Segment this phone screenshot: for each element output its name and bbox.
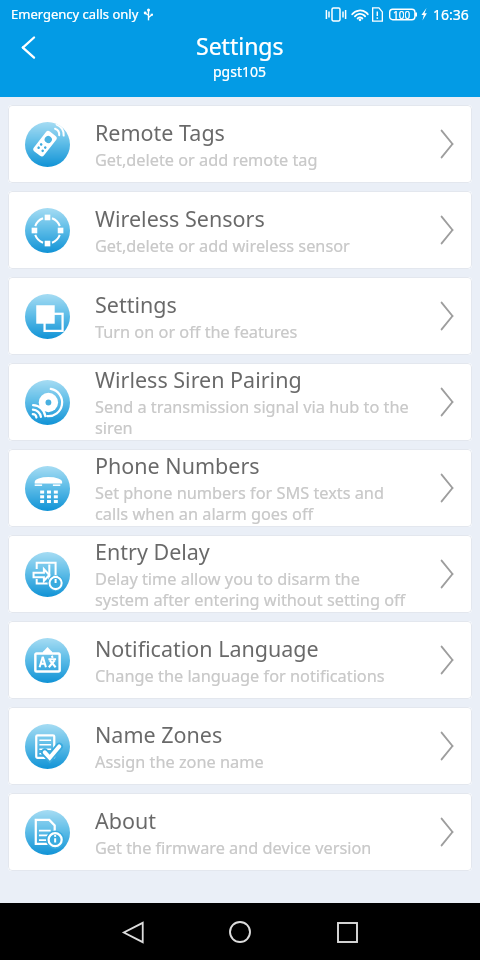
button[interactable]: Remote Tags: [8, 105, 472, 183]
staticText: Turn on or off the features: [95, 321, 298, 343]
staticText: Notification Language: [95, 634, 319, 663]
button[interactable]: Home: [220, 912, 260, 952]
button[interactable]: Wireless Sensors: [8, 191, 472, 269]
staticText: pgst105: [213, 62, 267, 81]
button[interactable]: Recents: [327, 912, 367, 952]
staticText: Remote Tags: [95, 118, 225, 147]
button[interactable]: Back: [7, 25, 51, 69]
button[interactable]: About: [8, 793, 472, 871]
staticText: Set phone numbers for SMS texts and call…: [95, 482, 410, 525]
button[interactable]: Back: [113, 912, 153, 952]
staticText: Wirless Siren Pairing: [95, 365, 302, 394]
button[interactable]: Settings: [8, 277, 472, 355]
staticText: Delay time allow you to disarm the syste…: [95, 568, 410, 611]
button[interactable]: Phone Numbers: [8, 449, 472, 527]
staticText: Get,delete or add remote tag: [95, 149, 318, 171]
staticText: Phone Numbers: [95, 451, 260, 480]
staticText: 16:36: [433, 5, 469, 24]
staticText: Settings: [95, 290, 177, 319]
staticText: Get the firmware and device version: [95, 837, 372, 859]
staticText: Emergency calls only: [11, 5, 139, 23]
staticText: Name Zones: [95, 720, 223, 749]
staticText: Wireless Sensors: [95, 204, 265, 233]
staticText: Send a transmission signal via hub to th…: [95, 396, 410, 439]
staticText: 100: [393, 8, 411, 21]
staticText: About: [95, 806, 157, 835]
staticText: Settings: [196, 30, 284, 61]
button[interactable]: Notification Language: [8, 621, 472, 699]
button[interactable]: Entry Delay: [8, 535, 472, 613]
staticText: Get,delete or add wireless sensor: [95, 235, 350, 257]
staticText: Entry Delay: [95, 537, 210, 566]
staticText: Assign the zone name: [95, 751, 264, 773]
staticText: Change the language for notifications: [95, 665, 385, 687]
button[interactable]: Wirless Siren Pairing: [8, 363, 472, 441]
button[interactable]: Name Zones: [8, 707, 472, 785]
